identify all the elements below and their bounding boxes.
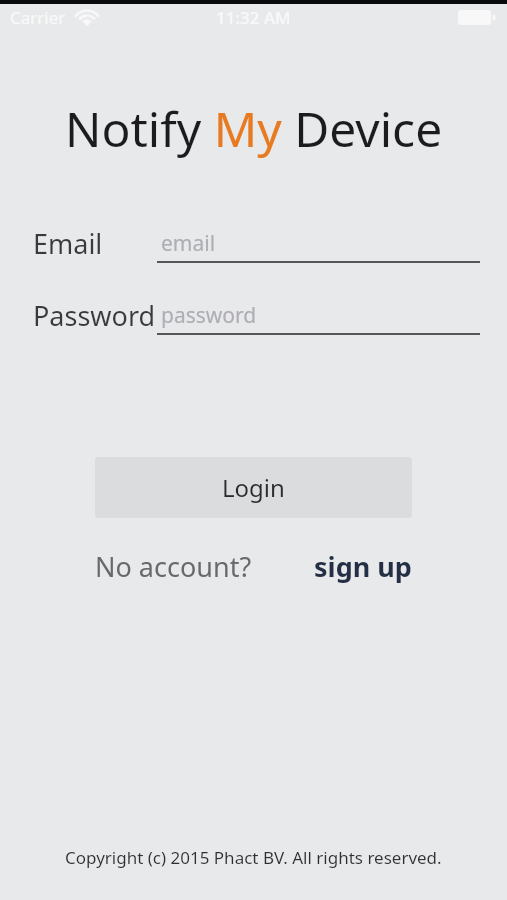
button[interactable]: Password [0, 294, 507, 342]
staticText: Password [33, 297, 156, 334]
staticText: 11:32 AM [216, 6, 291, 29]
staticText: Login [222, 471, 285, 504]
staticText: No account? [95, 548, 252, 585]
button[interactable]: Login [95, 457, 412, 518]
staticText: Copyright (c) 2015 Phact BV. All rights … [65, 846, 442, 869]
staticText: Email [33, 225, 103, 262]
button[interactable]: Email [0, 222, 507, 270]
staticText: password [161, 301, 257, 330]
staticText: Notify My Device [65, 96, 443, 161]
button[interactable]: sign up [314, 548, 412, 585]
staticText: sign up [314, 548, 412, 585]
staticText: email [161, 229, 216, 258]
staticText: Carrier [10, 6, 66, 29]
